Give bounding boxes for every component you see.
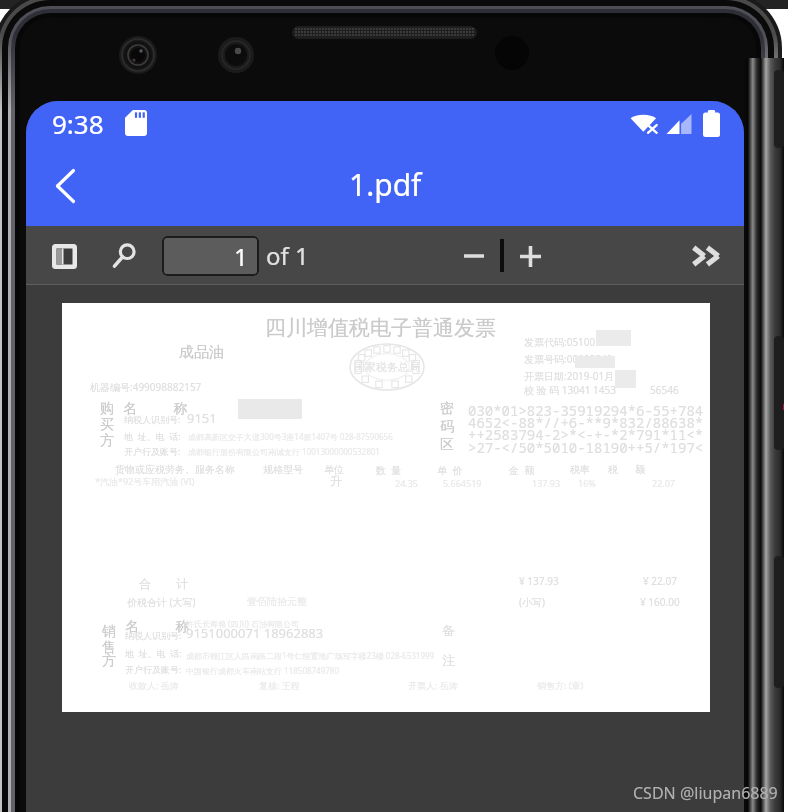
staticText: 4652<-88*//+6-**9*832/88638* bbox=[468, 413, 704, 432]
staticText: 买 bbox=[100, 416, 114, 434]
staticText: 纳税人识别号: bbox=[125, 629, 182, 641]
staticText: 1.pdf bbox=[349, 164, 422, 205]
staticText: 销 bbox=[102, 623, 116, 641]
staticText: 纳税人识别号: bbox=[124, 413, 181, 425]
staticText: 复核: 王程 bbox=[259, 679, 300, 691]
staticText: 机器编号:499098882157 bbox=[90, 380, 202, 394]
button[interactable]: More options bbox=[679, 229, 733, 283]
staticText: 成品油 bbox=[179, 343, 224, 362]
staticText: 升 bbox=[330, 473, 342, 488]
staticText: 9151000071 18962883 bbox=[186, 624, 324, 642]
staticText: 5.664519 bbox=[443, 477, 482, 489]
staticText: 销售方: (章) bbox=[537, 679, 584, 691]
staticText: 密 bbox=[440, 400, 454, 418]
staticText: of 1 bbox=[266, 239, 309, 272]
staticText: 购 bbox=[100, 400, 114, 418]
staticText: 壹佰陆拾元整 bbox=[247, 595, 307, 608]
staticText: 名 称 bbox=[123, 398, 188, 417]
staticText: 金 额 bbox=[509, 463, 535, 477]
staticText: 方 bbox=[102, 652, 116, 670]
staticText: 四川增值税电子普通发票 bbox=[265, 315, 496, 341]
staticText: 16% bbox=[578, 477, 596, 489]
staticText: 规格型号 bbox=[263, 463, 303, 476]
staticText: 24.35 bbox=[395, 477, 419, 489]
staticText: ++2583794-2>*<-+-*2*791*11<* bbox=[468, 425, 704, 444]
staticText: ]_., bbox=[274, 396, 290, 412]
staticText: 030*01>823-35919294*6-55+784 bbox=[468, 401, 704, 420]
button[interactable]: 1 bbox=[162, 236, 259, 276]
staticText: 价税合计 (大写) bbox=[127, 595, 196, 609]
staticText: 国家税务总局 bbox=[354, 360, 420, 374]
staticText: 单位 bbox=[324, 463, 344, 476]
staticText: 校 验 码 13041 1453 bbox=[524, 383, 616, 397]
staticText: 成都银行股份有限公司南城支行 10013000000532801 bbox=[188, 446, 380, 457]
staticText: 税 bbox=[608, 463, 618, 476]
staticText: 方 bbox=[100, 432, 114, 450]
staticText: ¥ 137.93 bbox=[519, 574, 559, 588]
staticText: ¥ 160.00 bbox=[640, 595, 680, 609]
staticText: 地 址、电 话: bbox=[125, 647, 182, 659]
staticText: 成都高新区交子大道300号3座14层1407号 028-87590656 bbox=[188, 431, 393, 442]
staticText: 56546 bbox=[650, 383, 679, 397]
staticText: CSDN @liupan6889 bbox=[633, 782, 778, 804]
staticText: >27-</50*5010-18190++5/*197< bbox=[468, 438, 704, 457]
staticText: (小写) bbox=[519, 595, 545, 609]
staticText: 9:38 bbox=[52, 106, 104, 141]
staticText: 开票人: 岳涛 bbox=[408, 679, 458, 691]
staticText: 成都市锦江区人民南路二段1号仁恒置地广场写字楼23楼 028-6531999 bbox=[186, 650, 435, 661]
staticText: 9151 bbox=[187, 409, 217, 427]
staticText: 收款人: 岳涛 bbox=[129, 679, 179, 691]
staticText: 开户行及账号: bbox=[124, 445, 181, 457]
staticText: 货物或应税劳务、服务名称 bbox=[115, 463, 235, 476]
staticText: 单 价 bbox=[437, 463, 463, 477]
button[interactable]: Zoom out bbox=[450, 232, 498, 280]
staticText: 备 bbox=[442, 622, 455, 638]
staticText: 税率 bbox=[570, 463, 590, 476]
staticText: 地 址、电 话: bbox=[124, 430, 181, 442]
staticText: 开票日期:2019-01月 bbox=[524, 369, 615, 383]
staticText: 发票代码:051001800 bbox=[524, 335, 619, 349]
staticText: *汽油*92号车用汽油 (VI) bbox=[95, 475, 195, 487]
staticText: 数 量 bbox=[376, 463, 402, 477]
staticText: 发票号码:00000040 bbox=[524, 352, 613, 366]
button[interactable]: Zoom in bbox=[506, 232, 554, 280]
staticText: 码 bbox=[440, 418, 454, 436]
button[interactable]: Search bbox=[102, 234, 146, 278]
staticText: 注 bbox=[442, 652, 455, 668]
staticText: 1 bbox=[234, 240, 248, 273]
staticText: 合 计 bbox=[139, 575, 188, 591]
button[interactable]: Back bbox=[38, 159, 92, 213]
staticText: 许氏长寿粮 (四川) 石油有限公司 bbox=[186, 618, 299, 629]
staticText: 区 bbox=[440, 436, 454, 454]
staticText: 137.93 bbox=[532, 477, 561, 489]
staticText: 中国银行成都火车南站支行 118508749780 bbox=[186, 665, 339, 676]
staticText: 名 称 bbox=[125, 616, 190, 635]
staticText: 开户行及账号: bbox=[125, 663, 182, 675]
staticText: 售 bbox=[102, 639, 116, 657]
staticText: ¥ 22.07 bbox=[643, 574, 677, 588]
staticText: 额 bbox=[635, 463, 645, 476]
button[interactable]: Toggle sidebar bbox=[42, 234, 86, 278]
staticText: 22.07 bbox=[652, 477, 676, 489]
